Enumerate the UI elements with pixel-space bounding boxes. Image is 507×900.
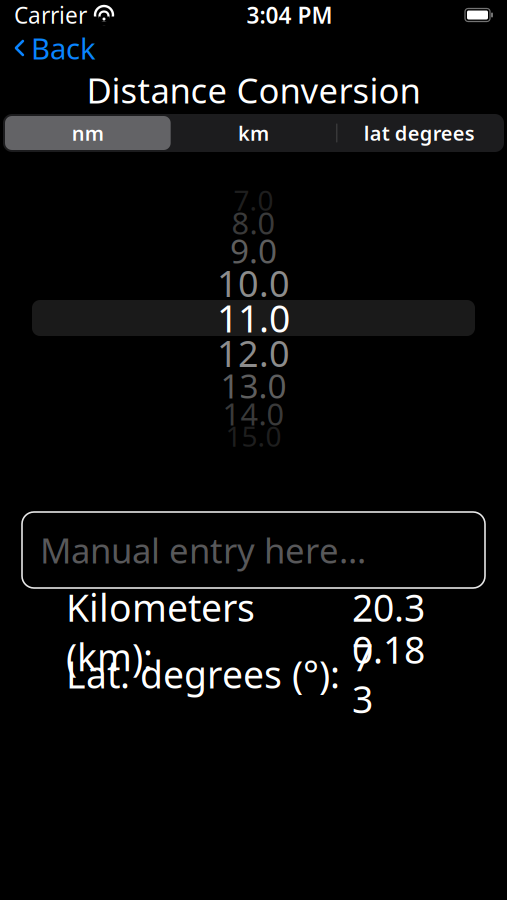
staticText: 10.0 <box>217 259 290 307</box>
staticText: Manual entry here... <box>40 527 366 573</box>
button[interactable]: Manual entry here... <box>22 512 485 588</box>
staticText: 0.183 <box>352 624 425 724</box>
staticText: Distance Conversion <box>86 67 420 113</box>
staticText: 12.0 <box>217 329 290 377</box>
staticText: 7.0 <box>233 181 273 219</box>
button[interactable]: Back <box>0 22 110 73</box>
staticText: nm <box>72 120 104 146</box>
staticText: Lat. degrees (°): <box>66 649 340 699</box>
button[interactable]: nm <box>5 116 171 150</box>
staticText: Back <box>31 28 96 67</box>
staticText: 14.0 <box>222 393 284 434</box>
staticText: 3:04 PM <box>246 0 332 30</box>
button[interactable]: lat degrees <box>336 116 502 150</box>
staticText: km <box>238 120 269 146</box>
staticText: 20.37 <box>352 582 425 682</box>
staticText: 9.0 <box>230 228 277 273</box>
button[interactable]: km <box>171 116 336 150</box>
staticText: 15.0 <box>225 417 281 455</box>
staticText: 13.0 <box>220 363 286 408</box>
staticText: 8.0 <box>231 202 275 243</box>
staticText: 11.0 <box>217 293 290 343</box>
staticText: Kilometers (km): <box>66 582 255 682</box>
staticText: Carrier <box>14 0 87 30</box>
staticText: lat degrees <box>364 120 475 146</box>
